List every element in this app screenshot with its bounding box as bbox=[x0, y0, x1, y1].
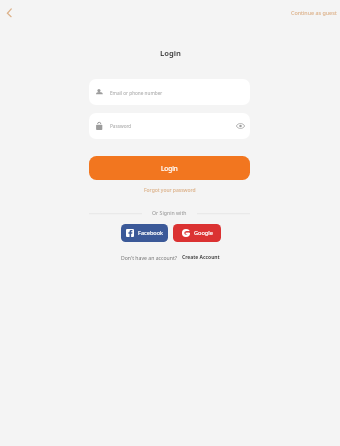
staticText: Or Signin with bbox=[152, 209, 187, 216]
staticText: Forgot your password bbox=[144, 187, 196, 194]
staticText: Don't have an account? bbox=[121, 254, 178, 261]
staticText: Create Account bbox=[182, 254, 220, 261]
staticText: Facebook bbox=[138, 229, 164, 237]
staticText: Email or phone number bbox=[110, 90, 163, 96]
button[interactable]: Facebook bbox=[121, 224, 168, 242]
staticText: Login bbox=[161, 164, 178, 173]
staticText: Login bbox=[160, 48, 181, 58]
button[interactable]: Password bbox=[89, 113, 250, 139]
button[interactable]: Show password bbox=[234, 120, 246, 132]
button[interactable]: Forgot your password bbox=[142, 185, 198, 196]
staticText: Password bbox=[110, 123, 132, 129]
button[interactable]: Back bbox=[0, 2, 20, 22]
button[interactable]: Continue as guest bbox=[289, 7, 339, 18]
button[interactable]: Create Account bbox=[182, 254, 220, 261]
staticText: Continue as guest bbox=[291, 9, 337, 16]
button[interactable]: Login bbox=[89, 156, 250, 180]
staticText: Google bbox=[194, 229, 213, 237]
button[interactable]: Email or phone number bbox=[89, 79, 250, 105]
button[interactable]: Google bbox=[173, 224, 221, 242]
